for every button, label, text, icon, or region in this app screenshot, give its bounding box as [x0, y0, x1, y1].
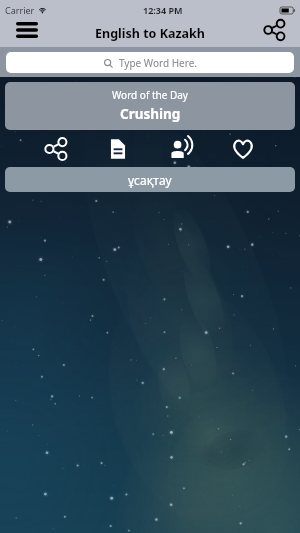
button[interactable]: Favorite [228, 134, 258, 164]
button[interactable]: Definition [103, 134, 133, 164]
button[interactable]: Menu [16, 20, 42, 39]
staticText: English to Kazakh [95, 25, 205, 42]
staticText: Type Word Here. [119, 56, 197, 70]
button[interactable]: Word of the Day [5, 82, 295, 130]
staticText: ұсақтау [128, 172, 172, 188]
button[interactable]: Type Word Here. [6, 52, 294, 73]
button[interactable]: Pronounce [166, 134, 196, 164]
button[interactable]: Share [261, 20, 287, 40]
staticText: Carrier [5, 4, 35, 16]
staticText: Word of the Day [112, 88, 188, 102]
button[interactable]: Share [41, 134, 71, 164]
staticText: 12:34 PM [143, 4, 183, 16]
button[interactable]: ұсақтау [5, 167, 295, 192]
staticText: Crushing [120, 105, 181, 123]
